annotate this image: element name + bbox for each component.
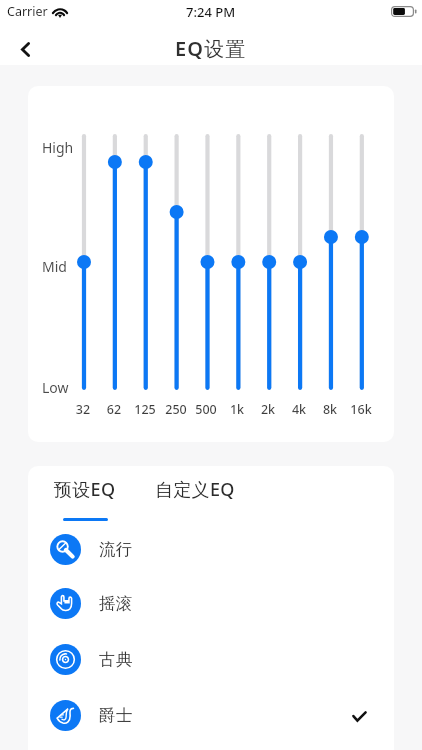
button[interactable]: 爵士 <box>28 688 394 743</box>
staticText: Low <box>42 378 69 397</box>
staticText: 摇滚 <box>99 593 133 614</box>
button[interactable]: 自定义EQ <box>155 477 235 521</box>
staticText: 8k <box>312 401 348 418</box>
button[interactable]: 500 band level <box>194 124 220 400</box>
staticText: 古典 <box>99 649 133 670</box>
staticText: Mid <box>42 257 67 276</box>
staticText: 流行 <box>99 539 133 560</box>
staticText: High <box>42 138 74 157</box>
button[interactable]: 16k band level <box>349 124 375 400</box>
staticText: 爵士 <box>99 705 133 726</box>
staticText: 16k <box>343 401 379 418</box>
staticText: Carrier <box>7 3 48 20</box>
staticText: 1k <box>219 401 255 418</box>
staticText: 125 <box>127 401 163 418</box>
button[interactable]: 62 band level <box>102 124 128 400</box>
button[interactable]: 125 band level <box>133 124 159 400</box>
button[interactable]: 250 band level <box>164 124 190 400</box>
staticText: 32 <box>65 401 101 418</box>
button[interactable]: Back <box>8 30 42 68</box>
staticText: 4k <box>281 401 317 418</box>
staticText: 250 <box>158 401 194 418</box>
staticText: 7:24 PM <box>186 3 236 21</box>
staticText: 2k <box>250 401 286 418</box>
button[interactable]: 预设EQ <box>54 477 116 521</box>
staticText: 62 <box>96 401 132 418</box>
button[interactable]: 4k band level <box>287 124 313 400</box>
button[interactable]: 古典 <box>28 632 394 687</box>
staticText: 自定义EQ <box>155 477 235 502</box>
staticText: 预设EQ <box>54 477 116 502</box>
button[interactable]: 摇滚 <box>28 576 394 631</box>
staticText: EQ设置 <box>175 35 247 62</box>
button[interactable]: 流行 <box>28 522 394 577</box>
button[interactable]: 32 band level <box>71 124 97 400</box>
button[interactable]: 1k band level <box>225 124 251 400</box>
button[interactable]: 2k band level <box>256 124 282 400</box>
button[interactable]: 8k band level <box>318 124 344 400</box>
staticText: 500 <box>188 401 224 418</box>
